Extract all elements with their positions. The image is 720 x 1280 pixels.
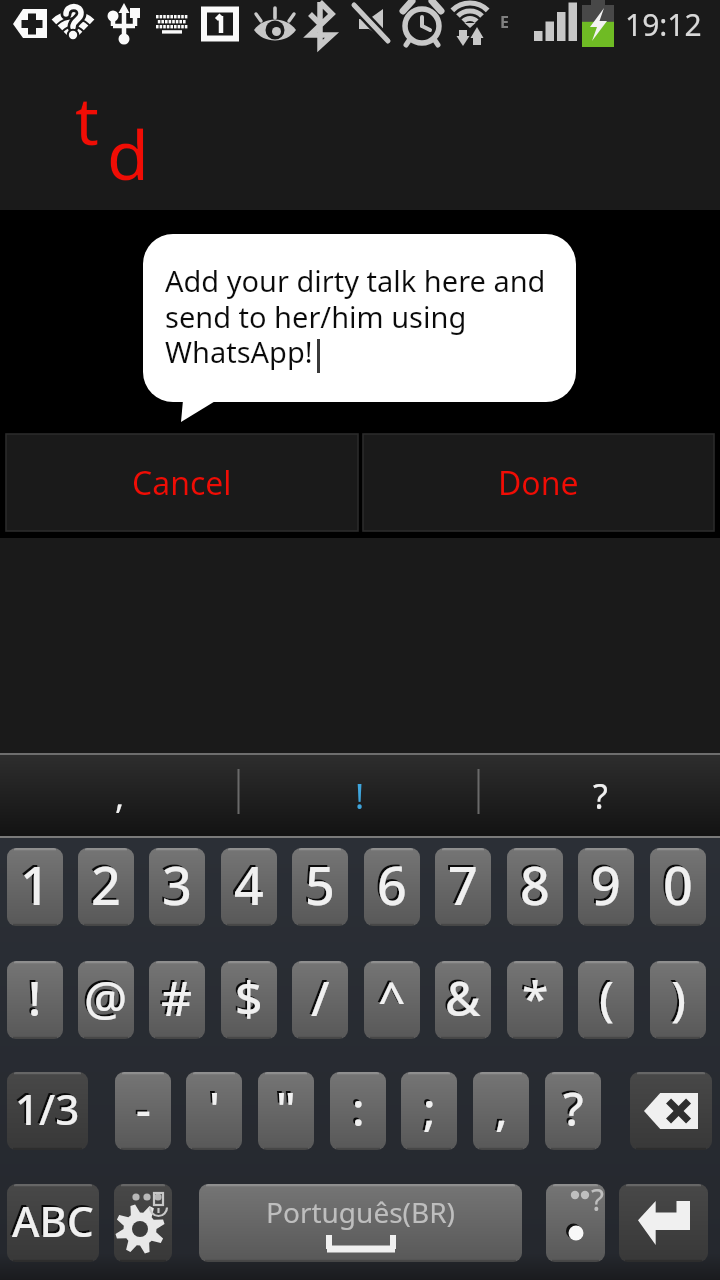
staticText: ' bbox=[207, 1075, 218, 1138]
staticText: 6 bbox=[377, 849, 407, 920]
staticText: - bbox=[134, 1075, 149, 1138]
staticText: E bbox=[500, 11, 509, 33]
staticText: 5 bbox=[305, 849, 335, 920]
staticText: , bbox=[493, 1075, 506, 1138]
staticText: ! bbox=[355, 773, 365, 819]
button[interactable]: ( bbox=[578, 961, 634, 1039]
staticText: ? bbox=[563, 1077, 584, 1140]
button[interactable]: Backspace bbox=[630, 1072, 712, 1150]
staticText: ! bbox=[26, 963, 40, 1028]
staticText: 9 bbox=[589, 848, 619, 918]
staticText: 3 bbox=[160, 848, 190, 918]
staticText: / bbox=[309, 963, 328, 1028]
staticText: / bbox=[311, 965, 330, 1030]
button[interactable]: - bbox=[115, 1072, 171, 1150]
staticText: Cancel bbox=[132, 461, 232, 505]
staticText: 0 bbox=[663, 849, 693, 920]
staticText: " bbox=[274, 1075, 294, 1138]
button[interactable]: 3 bbox=[149, 848, 205, 926]
staticText: 7 bbox=[448, 849, 478, 920]
staticText: 0 bbox=[661, 848, 691, 918]
button[interactable]: & bbox=[435, 961, 491, 1039]
button[interactable]: 5 bbox=[292, 848, 348, 926]
button[interactable]: ^ bbox=[364, 961, 420, 1039]
staticText: ? bbox=[561, 1075, 582, 1138]
staticText: ) bbox=[669, 963, 684, 1028]
button[interactable]: / bbox=[292, 961, 348, 1039]
staticText: $ bbox=[233, 963, 261, 1028]
staticText: t bbox=[75, 74, 99, 164]
staticText: " bbox=[276, 1077, 296, 1140]
button[interactable]: 1 bbox=[7, 848, 63, 926]
staticText: ( bbox=[599, 965, 614, 1030]
button[interactable]: Space bbox=[199, 1184, 522, 1262]
staticText: ^ bbox=[376, 963, 404, 1028]
staticText: - bbox=[136, 1077, 151, 1140]
staticText: Add your dirty talk here and send to her… bbox=[165, 261, 546, 371]
button[interactable]: 2 bbox=[78, 848, 134, 926]
button[interactable]: ABC bbox=[7, 1184, 99, 1262]
staticText: ) bbox=[671, 965, 686, 1030]
staticText: : bbox=[352, 1077, 365, 1140]
staticText: , bbox=[495, 1077, 508, 1140]
button[interactable]: # bbox=[149, 961, 205, 1039]
button[interactable]: 0 bbox=[650, 848, 706, 926]
button[interactable]: ! bbox=[7, 961, 63, 1039]
staticText: 1 bbox=[18, 848, 48, 918]
staticText: Done bbox=[498, 461, 579, 505]
staticText: 8 bbox=[518, 848, 548, 918]
staticText: # bbox=[159, 963, 191, 1028]
staticText: # bbox=[161, 965, 193, 1030]
staticText: ; bbox=[423, 1077, 436, 1140]
button[interactable]: , bbox=[0, 753, 240, 838]
button[interactable]: * bbox=[507, 961, 563, 1039]
staticText: & bbox=[443, 963, 479, 1028]
button[interactable]: ) bbox=[650, 961, 706, 1039]
staticText: 4 bbox=[234, 849, 264, 920]
button[interactable]: 4 bbox=[221, 848, 277, 926]
button[interactable]: 8 bbox=[507, 848, 563, 926]
button[interactable]: @ bbox=[78, 961, 134, 1039]
button[interactable]: 9 bbox=[578, 848, 634, 926]
staticText: 9 bbox=[591, 849, 621, 920]
staticText: 2 bbox=[91, 849, 121, 920]
button[interactable]: : bbox=[330, 1072, 386, 1150]
staticText: ? bbox=[593, 773, 608, 819]
staticText: ( bbox=[597, 963, 612, 1028]
staticText: , bbox=[115, 773, 125, 819]
button[interactable]: 1/3 bbox=[7, 1072, 88, 1150]
button[interactable]: ? bbox=[545, 1072, 601, 1150]
staticText: ? bbox=[591, 1184, 605, 1220]
staticText: 1 bbox=[20, 849, 50, 920]
button[interactable]: 7 bbox=[435, 848, 491, 926]
staticText: @ bbox=[84, 965, 128, 1030]
staticText: d bbox=[107, 107, 149, 200]
staticText: ABC bbox=[10, 1190, 92, 1247]
button[interactable]: Settings bbox=[114, 1184, 172, 1262]
button[interactable]: Enter bbox=[619, 1184, 708, 1262]
button[interactable]: ? bbox=[480, 753, 720, 838]
staticText: 8 bbox=[520, 849, 550, 920]
button[interactable]: $ bbox=[221, 961, 277, 1039]
button[interactable]: ' bbox=[186, 1072, 242, 1150]
staticText: 2 bbox=[89, 848, 119, 918]
staticText: ^ bbox=[378, 965, 406, 1030]
staticText: 6 bbox=[375, 848, 405, 918]
button[interactable]: " bbox=[258, 1072, 314, 1150]
staticText: 4 bbox=[232, 848, 262, 918]
button[interactable]: ; bbox=[401, 1072, 457, 1150]
button[interactable]: Done bbox=[363, 434, 714, 531]
staticText: @ bbox=[82, 963, 126, 1028]
button[interactable]: , bbox=[473, 1072, 529, 1150]
staticText: Português(BR) bbox=[266, 1193, 456, 1231]
button[interactable]: ! bbox=[240, 753, 480, 838]
button[interactable]: Cancel bbox=[6, 434, 358, 531]
button[interactable]: 6 bbox=[364, 848, 420, 926]
button[interactable]: Add your dirty talk here and send to her… bbox=[143, 234, 576, 402]
staticText: * bbox=[522, 965, 549, 1030]
button[interactable]: Period bbox=[546, 1184, 605, 1262]
staticText: & bbox=[445, 965, 481, 1030]
staticText: 7 bbox=[446, 848, 476, 918]
staticText: ! bbox=[28, 965, 42, 1030]
staticText: 3 bbox=[162, 849, 192, 920]
